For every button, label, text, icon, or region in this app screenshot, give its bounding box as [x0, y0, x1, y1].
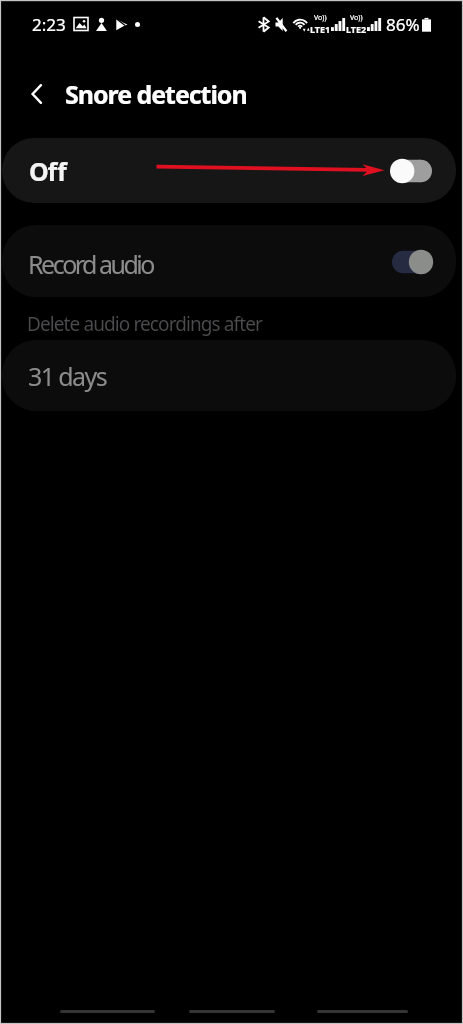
staticText: Off — [29, 154, 66, 188]
staticText: 86% — [386, 13, 420, 36]
button[interactable]: Toggle on — [390, 249, 434, 275]
staticText: Delete audio recordings after — [27, 311, 262, 337]
button[interactable]: Recents — [60, 1003, 155, 1020]
button[interactable]: Back — [317, 1003, 408, 1020]
staticText: Snore detection — [65, 77, 247, 111]
staticText: LTE1 — [310, 23, 331, 35]
staticText: 2:23 — [32, 13, 66, 36]
staticText: Vo)) — [350, 13, 363, 23]
staticText: 31 days — [28, 359, 107, 393]
button[interactable]: Home — [189, 1003, 275, 1020]
button[interactable]: Back — [18, 75, 56, 113]
staticText: Vo)) — [314, 13, 327, 23]
staticText: Record audio — [28, 247, 153, 281]
staticText: LTE2 — [346, 23, 367, 35]
button[interactable]: 31 days — [2, 340, 456, 411]
button[interactable]: Record audio — [2, 225, 456, 297]
button[interactable]: Off — [2, 138, 456, 203]
button[interactable]: Toggle off — [390, 158, 434, 184]
